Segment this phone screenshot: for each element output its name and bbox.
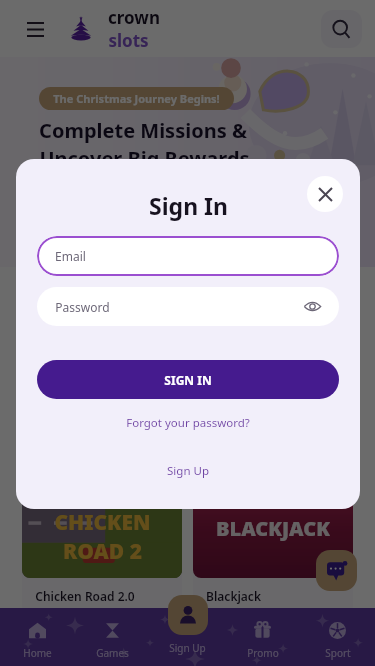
staticText: Chicken Road 2.0	[35, 588, 135, 604]
staticText: Sign Up	[169, 641, 206, 655]
button[interactable]: BLACKJACK	[193, 452, 353, 615]
button[interactable]: Promo	[225, 608, 300, 666]
staticText: Promo	[247, 646, 279, 660]
staticText: BLACKJACK	[216, 515, 330, 542]
button[interactable]: Chat support	[316, 550, 357, 591]
button[interactable]: Forgot your password?	[37, 399, 339, 447]
staticText: slots	[108, 29, 149, 52]
staticText: Email	[55, 248, 86, 264]
button[interactable]: Sign Up	[168, 595, 208, 635]
staticText: Games	[96, 646, 129, 660]
button[interactable]: Games	[75, 608, 150, 666]
staticText: Uncover Big Rewards	[39, 145, 250, 172]
button[interactable]: Home	[0, 608, 75, 666]
staticText: crown	[108, 6, 160, 29]
staticText: ROAD 2	[63, 537, 142, 566]
staticText: Blackjack	[206, 588, 261, 604]
button[interactable]: CHICKEN	[22, 452, 182, 615]
staticText: Sport	[325, 646, 351, 660]
staticText: The Christmas Journey Begins!	[53, 91, 220, 106]
staticText: Home	[23, 646, 52, 660]
button[interactable]: Password	[37, 287, 339, 326]
button[interactable]: Email	[37, 236, 339, 276]
staticText: Password	[55, 299, 110, 315]
staticText: SIGN IN	[164, 372, 212, 388]
button[interactable]: Menu	[19, 13, 51, 45]
button[interactable]: SIGN IN	[37, 360, 339, 399]
button[interactable]: Search	[321, 10, 362, 48]
staticText: Complete Missions &	[39, 117, 247, 144]
button[interactable]: Sport	[300, 608, 375, 666]
staticText: CHICKEN	[54, 508, 151, 537]
staticText: Forgot your password?	[126, 415, 250, 431]
button[interactable]: Close	[307, 176, 343, 212]
staticText: Sign Up	[167, 463, 209, 479]
staticText: Sign In	[149, 190, 228, 221]
button[interactable]: Sign Up	[37, 447, 339, 495]
